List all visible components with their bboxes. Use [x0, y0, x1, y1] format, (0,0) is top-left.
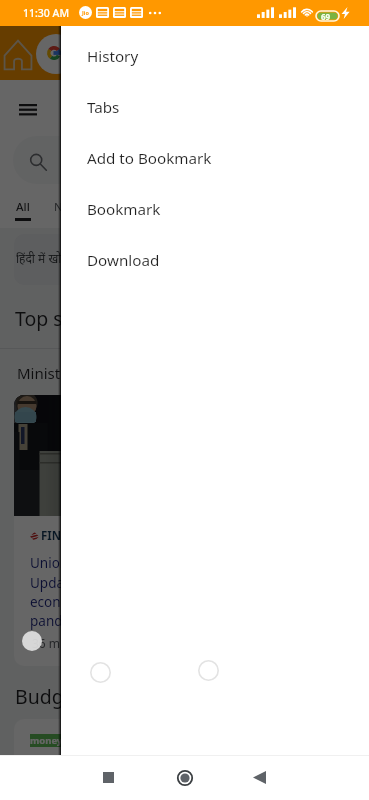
staticText: Top stories	[15, 305, 115, 332]
staticText: Tabs	[87, 97, 120, 118]
staticText: 36 minutes ago	[32, 635, 120, 651]
staticText: Bookmark	[87, 199, 161, 220]
staticText: Images	[105, 199, 146, 215]
staticText: 69	[321, 11, 331, 21]
staticText: News	[54, 199, 84, 215]
button[interactable]: Home	[164, 755, 205, 800]
button[interactable]: Bookmark	[61, 184, 369, 235]
staticText: Add to Bookmark	[87, 148, 212, 169]
staticText: Download	[87, 250, 160, 271]
staticText: Union Budget 2021 Updates: Boost for eco…	[30, 554, 175, 630]
button[interactable]: Tabs	[61, 82, 369, 133]
button[interactable]: Download	[61, 235, 369, 286]
staticText: moneycontrol	[30, 734, 82, 747]
staticText: FINANCIAL EXPRESS	[41, 528, 156, 544]
button[interactable]: Add to Bookmark	[61, 133, 369, 184]
button[interactable]: Recents	[88, 755, 128, 800]
button[interactable]: History	[61, 31, 369, 82]
staticText: हिंदी में खोजें	[16, 250, 71, 266]
staticText: History	[87, 46, 139, 67]
staticText: Budget 2021	[15, 683, 132, 710]
button[interactable]: Back	[239, 755, 279, 800]
staticText: 11:30 AM	[23, 6, 70, 20]
staticText: All	[16, 199, 30, 215]
staticText: Ministry of Finance	[17, 363, 151, 383]
staticText: Jio	[82, 9, 89, 16]
